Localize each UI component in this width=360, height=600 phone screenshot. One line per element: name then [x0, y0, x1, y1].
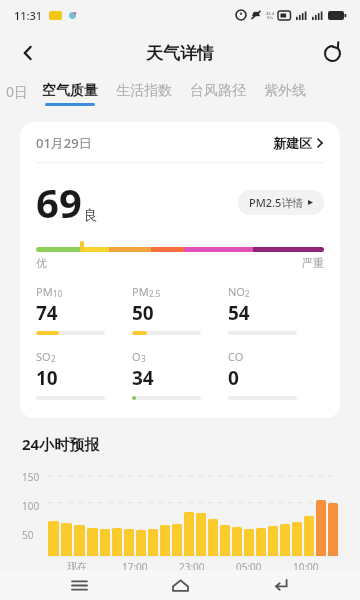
staticText: 紫外线 — [264, 82, 306, 100]
button[interactable]: Home — [158, 570, 202, 600]
staticText: 34 — [132, 365, 154, 391]
staticText: 69 — [36, 175, 82, 229]
staticText: 24小时预报 — [22, 434, 100, 454]
button[interactable]: Recent apps — [57, 570, 101, 600]
staticText: PM2.5详情 — [249, 195, 304, 210]
staticText: PM — [132, 284, 149, 299]
staticText: 10 — [53, 288, 63, 299]
staticText: 天气详情 — [146, 43, 214, 64]
button[interactable]: 新建区 — [273, 135, 324, 151]
staticText: 10:00 — [293, 560, 319, 574]
button[interactable]: 紫外线 — [264, 76, 306, 112]
staticText: 良 — [84, 207, 98, 225]
staticText: 优 — [36, 256, 47, 270]
staticText: O — [132, 349, 141, 364]
staticText: 台风路径 — [190, 82, 246, 100]
staticText: 空气质量 — [42, 82, 98, 100]
staticText: 01月29日 — [36, 134, 92, 152]
staticText: 3 — [141, 353, 146, 364]
staticText: 74 — [36, 300, 58, 326]
button[interactable]: 01月29日 — [20, 122, 340, 418]
staticText: 43.4 K/s — [266, 11, 274, 20]
staticText: 50 — [132, 300, 154, 326]
staticText: PM — [36, 284, 53, 299]
button[interactable]: 空气质量 — [42, 76, 98, 112]
staticText: 05:00 — [236, 560, 262, 574]
staticText: 50 — [22, 528, 34, 542]
button[interactable]: 台风路径 — [190, 76, 246, 112]
staticText: SO — [36, 349, 51, 364]
staticText: 100 — [22, 499, 40, 513]
button[interactable]: 生活指数 — [116, 76, 172, 112]
staticText: CO — [228, 349, 244, 364]
staticText: 2 — [245, 288, 250, 299]
staticText: 7天预报 — [22, 588, 76, 600]
button[interactable]: PM2.5详情 — [238, 190, 324, 215]
staticText: 0 — [228, 365, 239, 391]
staticText: 2.5 — [149, 288, 161, 299]
staticText: 新建区 — [273, 135, 312, 151]
staticText: 23:00 — [179, 560, 205, 574]
staticText: 150 — [22, 470, 40, 484]
staticText: 严重 — [302, 256, 324, 270]
staticText: 2 — [51, 353, 56, 364]
button[interactable]: 0日 — [6, 76, 29, 112]
staticText: 11:31 — [14, 8, 43, 23]
staticText: 17:00 — [122, 560, 148, 574]
staticText: 生活指数 — [116, 82, 172, 100]
staticText: 0日 — [6, 82, 29, 101]
staticText: 10 — [36, 365, 58, 391]
button[interactable]: Back — [8, 33, 48, 73]
button[interactable]: Refresh — [312, 33, 352, 73]
staticText: NO — [228, 284, 245, 299]
button[interactable]: Back — [259, 570, 303, 600]
staticText: 现在 — [67, 560, 87, 573]
staticText: 54 — [228, 300, 250, 326]
